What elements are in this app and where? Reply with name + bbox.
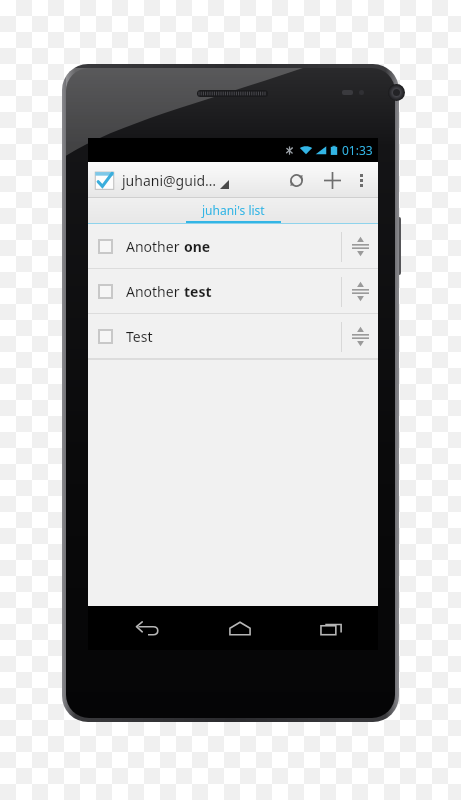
button[interactable]: Complete Test [98,329,113,344]
button[interactable]: Complete Another test [88,269,378,314]
button[interactable]: Complete Another one [98,239,113,254]
button[interactable]: Home [194,606,286,650]
button[interactable]: Back [102,606,194,650]
staticText: Another [126,282,184,301]
button[interactable]: Reorder Another one [342,224,378,269]
staticText: Another [126,237,184,256]
button[interactable]: Complete Another one [88,224,378,269]
button[interactable]: Recent apps [286,606,378,650]
staticText: 01:33 [342,142,373,158]
button[interactable]: Refresh [278,162,314,198]
staticText: juhani's list [202,202,265,218]
button[interactable]: juhani@guid… [94,162,278,198]
staticText: Test [126,327,153,346]
staticText: one [184,237,211,256]
button[interactable]: Add task [314,162,350,198]
button[interactable]: Complete Another test [98,284,113,299]
staticText: test [184,282,212,301]
button[interactable]: More options [350,162,372,198]
button[interactable]: Reorder Test [342,314,378,359]
button[interactable]: Complete Test [88,314,378,359]
staticText: juhani@guid… [122,171,217,190]
button[interactable]: juhani's list [88,198,378,224]
button[interactable]: Reorder Another test [342,269,378,314]
